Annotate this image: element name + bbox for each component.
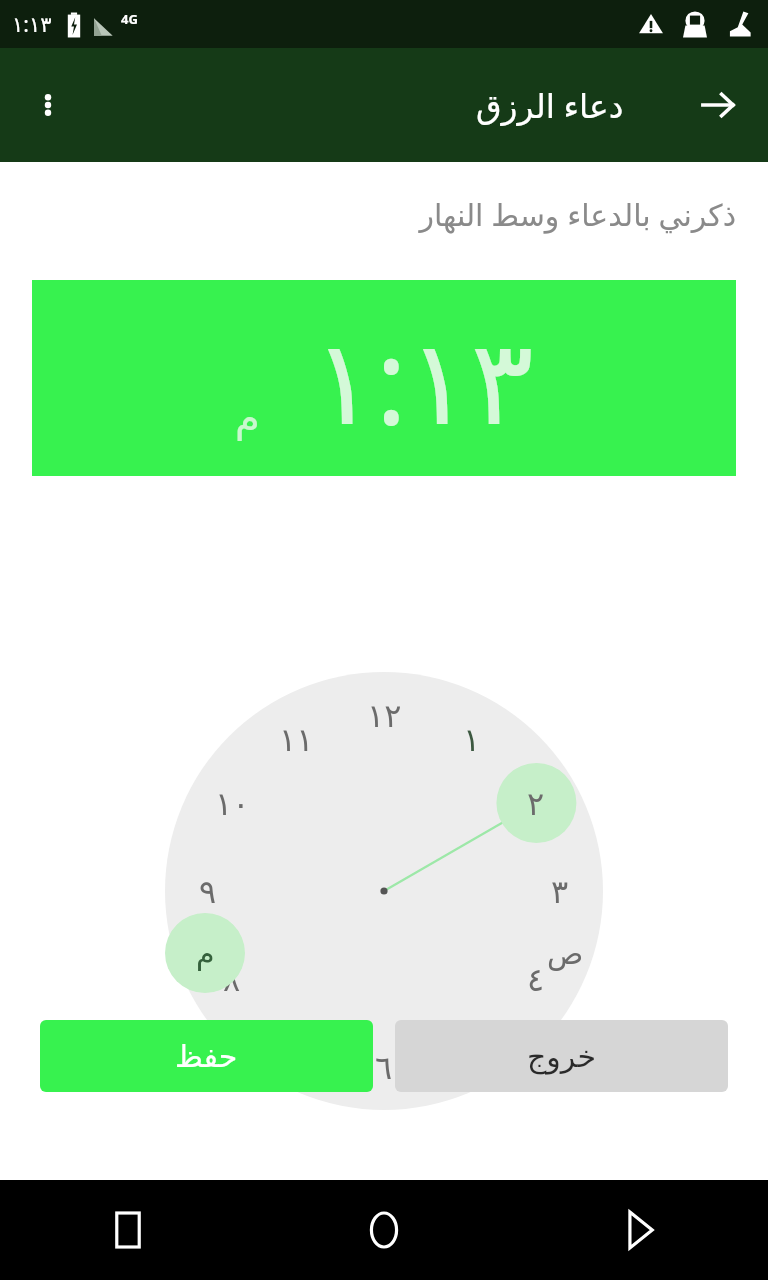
staticText: خروج bbox=[527, 1039, 596, 1074]
staticText: حفظ bbox=[175, 1039, 238, 1074]
button[interactable]: Back bbox=[512, 1180, 768, 1280]
button[interactable]: Home bbox=[256, 1180, 512, 1280]
button[interactable]: م bbox=[165, 913, 245, 993]
button[interactable]: خروج bbox=[395, 1020, 728, 1092]
button[interactable]: Back bbox=[690, 77, 746, 133]
button[interactable]: More options bbox=[24, 81, 72, 129]
staticText: ١١ bbox=[279, 721, 314, 758]
button[interactable]: حفظ bbox=[40, 1020, 373, 1092]
staticText: ١ bbox=[463, 721, 481, 758]
staticText: ٢ bbox=[527, 785, 545, 822]
staticText: م bbox=[196, 936, 215, 971]
button[interactable]: ص bbox=[525, 913, 605, 993]
staticText: ٩ bbox=[199, 873, 217, 910]
staticText: ص bbox=[547, 936, 584, 971]
staticText: ١٠ bbox=[215, 785, 250, 822]
staticText: ١:١٣ bbox=[12, 10, 52, 39]
staticText: ٤ bbox=[527, 961, 545, 998]
button[interactable]: Recent apps bbox=[0, 1180, 256, 1280]
staticText: ذكرني بالدعاء وسط النهار bbox=[419, 194, 736, 235]
staticText: ١٢ bbox=[367, 697, 402, 734]
staticText: ٦ bbox=[375, 1049, 393, 1086]
staticText: م bbox=[235, 394, 260, 441]
staticText: ٣ bbox=[551, 873, 569, 910]
staticText: 4G bbox=[121, 10, 138, 28]
staticText: دعاء الرزق bbox=[476, 83, 624, 128]
button[interactable]: م bbox=[32, 280, 736, 476]
staticText: ٨ bbox=[223, 961, 241, 998]
staticText: ١:١٣ bbox=[312, 298, 534, 459]
